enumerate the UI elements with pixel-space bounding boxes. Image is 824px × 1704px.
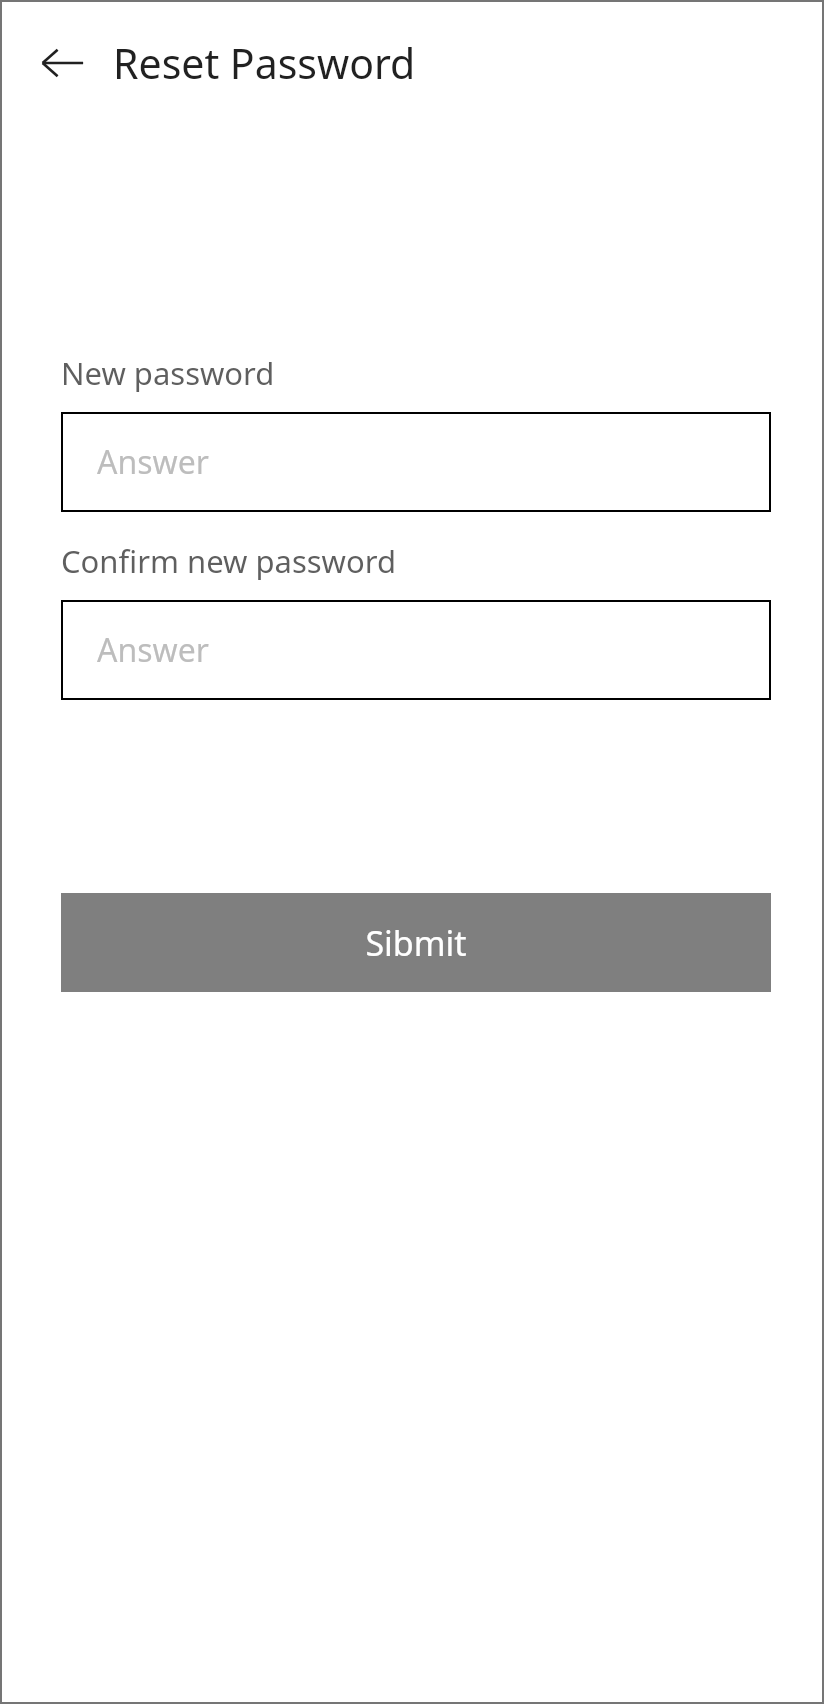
button[interactable]: Back <box>30 31 94 95</box>
staticText: Answer <box>97 628 209 672</box>
staticText: Confirm new password <box>61 540 396 582</box>
staticText: Answer <box>97 440 209 484</box>
button[interactable]: Answer <box>61 600 771 700</box>
button[interactable]: Answer <box>61 412 771 512</box>
staticText: Sibmit <box>365 920 467 966</box>
button[interactable]: Sibmit <box>61 893 771 992</box>
staticText: Reset Password <box>113 35 416 91</box>
staticText: New password <box>61 352 275 394</box>
